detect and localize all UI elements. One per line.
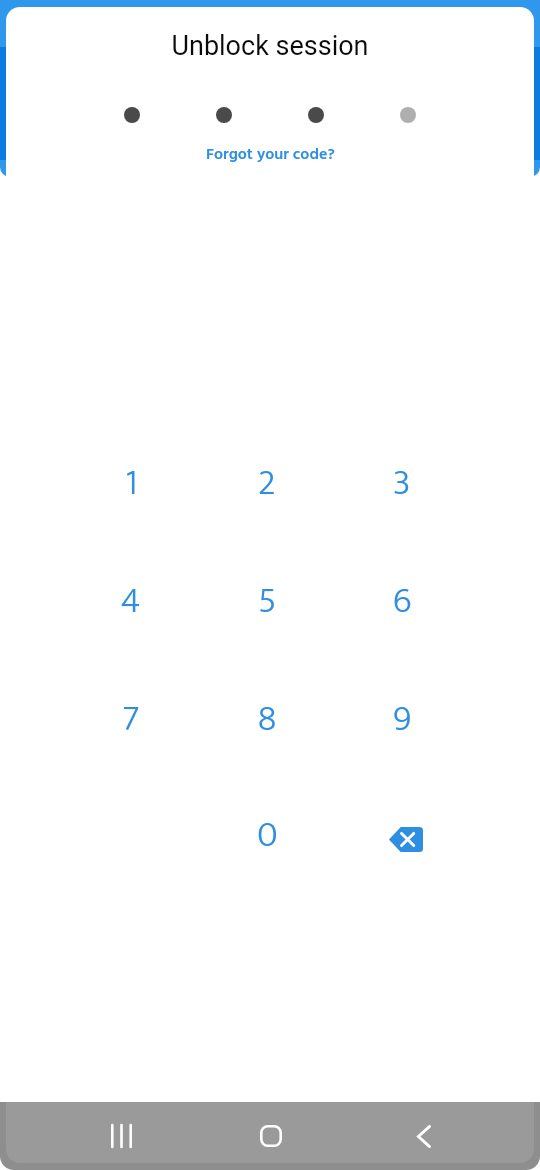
button[interactable]: Forgot your code? [196,138,345,172]
button[interactable]: 7 [87,675,175,763]
staticText: 4 [121,571,141,631]
button[interactable]: 1 [87,439,175,527]
button[interactable]: Backspace [362,795,450,883]
button[interactable]: 4 [87,557,175,645]
staticText: 5 [258,571,277,631]
button[interactable]: 9 [358,675,446,763]
button[interactable]: 8 [223,675,311,763]
staticText: Forgot your code? [206,142,335,168]
button[interactable]: 2 [223,439,311,527]
staticText: 3 [393,453,411,513]
staticText: 0 [257,805,278,865]
button[interactable]: 6 [358,557,446,645]
staticText: 1 [125,453,138,513]
staticText: 7 [122,689,140,749]
button[interactable]: Back [394,1106,454,1166]
staticText: Unblock session [0,30,540,62]
staticText: 9 [393,689,412,749]
staticText: 8 [258,689,277,749]
staticText: 2 [258,453,276,513]
button[interactable]: 3 [358,439,446,527]
button[interactable]: 0 [223,791,311,879]
button[interactable]: Home [241,1106,301,1166]
button[interactable]: Recent apps [91,1106,151,1166]
button[interactable]: 5 [223,557,311,645]
staticText: 6 [393,571,412,631]
